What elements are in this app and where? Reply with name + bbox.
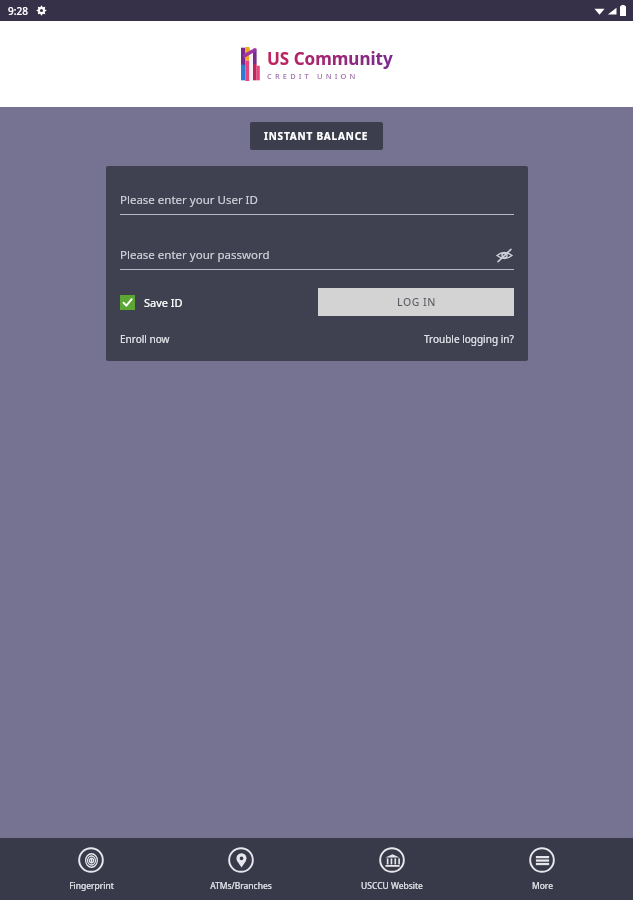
button[interactable]: ATMs/Branches [181,843,301,896]
button[interactable]: Please enter your password [120,245,514,270]
button[interactable]: Trouble logging in? [424,332,514,346]
button[interactable]: LOG IN [318,288,514,316]
staticText: Please enter your User ID [120,192,258,208]
staticText: LOG IN [397,295,436,309]
staticText: ATMs/Branches [210,880,272,892]
staticText: US Community [267,47,393,70]
staticText: More [532,880,553,892]
button[interactable]: Save ID [120,295,183,310]
button[interactable]: Please enter your User ID [120,192,514,215]
button[interactable]: Fingerprint [31,843,151,896]
button[interactable]: INSTANT BALANCE [250,122,383,150]
staticText: 9:28 [8,4,28,18]
staticText: USCCU Website [361,880,423,892]
staticText: Trouble logging in? [424,332,514,346]
staticText: INSTANT BALANCE [264,129,369,143]
button[interactable]: Show password [494,245,514,265]
button[interactable]: Enroll now [120,332,170,346]
button[interactable]: USCCU Website [332,843,452,896]
button[interactable]: More [482,843,602,896]
staticText: Please enter your password [120,247,494,263]
staticText: C R E D I T U N I O N [267,71,356,81]
staticText: Save ID [144,295,183,310]
staticText: Fingerprint [69,880,114,892]
staticText: Enroll now [120,332,170,346]
